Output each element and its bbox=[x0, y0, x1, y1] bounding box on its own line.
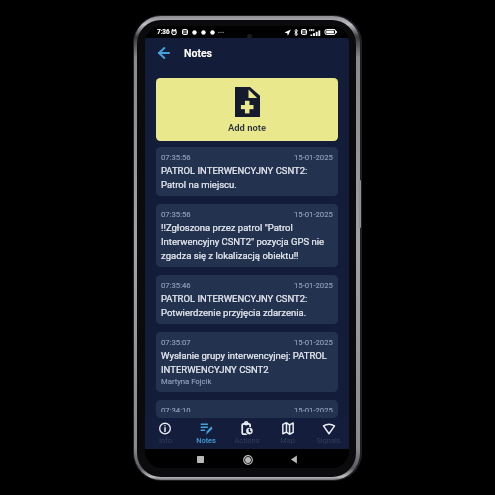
staticText: Martyna Fojcik bbox=[161, 377, 212, 386]
staticText: 15-01-2025 bbox=[294, 153, 333, 162]
staticText: PATROL INTERWENCYJNY CSNT2: Potwierdzeni… bbox=[161, 293, 333, 318]
staticText: Signals bbox=[316, 436, 341, 445]
staticText: 15-01-2025 bbox=[294, 210, 333, 219]
button[interactable]: 07:34:10 bbox=[156, 400, 338, 418]
button[interactable]: 07:35:07 bbox=[156, 332, 338, 392]
button[interactable]: Back bbox=[152, 41, 176, 65]
staticText: 15-01-2025 bbox=[294, 406, 333, 412]
button[interactable]: Recents bbox=[194, 453, 207, 466]
button[interactable]: Actions bbox=[226, 422, 267, 445]
staticText: Wysłanie grupy interwencyjnej: PATROL IN… bbox=[161, 350, 333, 375]
staticText: Info bbox=[159, 436, 172, 445]
button[interactable]: 07:35:56 bbox=[156, 204, 338, 267]
staticText: Map bbox=[280, 436, 295, 445]
button[interactable]: 07:35:56 bbox=[156, 147, 338, 196]
staticText: Notes bbox=[196, 436, 216, 445]
staticText: 07:34:10 bbox=[161, 406, 191, 412]
button[interactable]: Map bbox=[267, 422, 308, 445]
staticText: 7:36 bbox=[157, 28, 170, 36]
staticText: PATROL INTERWENCYJNY CSNT2: Patrol na mi… bbox=[161, 165, 333, 190]
staticText: Notes bbox=[184, 47, 212, 59]
button[interactable]: Back bbox=[287, 453, 300, 466]
staticText: Add note bbox=[228, 122, 267, 133]
button[interactable]: Signals bbox=[308, 422, 349, 445]
staticText: !!Zgłoszona przez patrol "Patrol Interwe… bbox=[161, 222, 333, 261]
staticText: 15-01-2025 bbox=[294, 338, 333, 347]
button[interactable]: 07:35:46 bbox=[156, 275, 338, 324]
staticText: 07:35:46 bbox=[161, 281, 191, 290]
staticText: Actions bbox=[234, 436, 260, 445]
staticText: 07:35:07 bbox=[161, 338, 191, 347]
button[interactable]: Info bbox=[145, 422, 185, 445]
staticText: 07:35:56 bbox=[161, 210, 191, 219]
button[interactable]: Add note bbox=[156, 78, 338, 141]
staticText: 07:35:56 bbox=[161, 153, 191, 162]
staticText: 15-01-2025 bbox=[294, 281, 333, 290]
button[interactable]: Home bbox=[241, 453, 254, 466]
button[interactable]: Notes bbox=[185, 422, 226, 445]
